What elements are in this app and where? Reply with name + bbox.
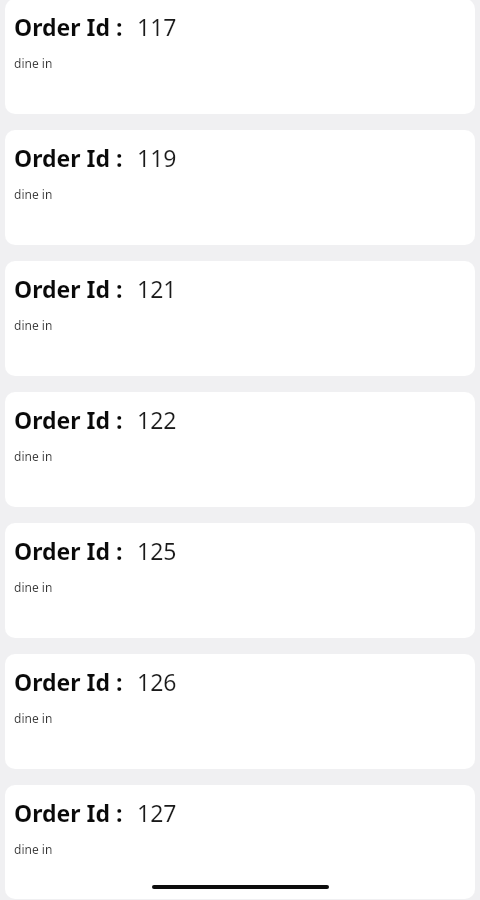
staticText: Order Id : xyxy=(14,11,123,42)
staticText: dine in xyxy=(14,710,53,726)
staticText: 119 xyxy=(137,142,177,173)
staticText: Order Id : xyxy=(14,797,123,828)
staticText: Order Id : xyxy=(14,535,123,566)
button[interactable]: Order Id : xyxy=(5,654,475,769)
staticText: 122 xyxy=(137,404,177,435)
button[interactable]: Order Id : xyxy=(5,0,475,114)
staticText: Order Id : xyxy=(14,142,123,173)
staticText: 117 xyxy=(137,11,177,42)
staticText: 125 xyxy=(137,535,177,566)
staticText: dine in xyxy=(14,579,53,595)
staticText: dine in xyxy=(14,317,53,333)
button[interactable]: Order Id : xyxy=(5,130,475,245)
staticText: 126 xyxy=(137,666,177,697)
staticText: 127 xyxy=(137,797,177,828)
staticText: Order Id : xyxy=(14,404,123,435)
staticText: dine in xyxy=(14,55,53,71)
staticText: Order Id : xyxy=(14,273,123,304)
button[interactable]: Order Id : xyxy=(5,785,475,899)
button[interactable]: Order Id : xyxy=(5,392,475,507)
staticText: dine in xyxy=(14,448,53,464)
staticText: 121 xyxy=(137,273,177,304)
staticText: Order Id : xyxy=(14,666,123,697)
staticText: dine in xyxy=(14,841,53,857)
button[interactable]: Order Id : xyxy=(5,523,475,638)
staticText: dine in xyxy=(14,186,53,202)
button[interactable]: Order Id : xyxy=(5,261,475,376)
